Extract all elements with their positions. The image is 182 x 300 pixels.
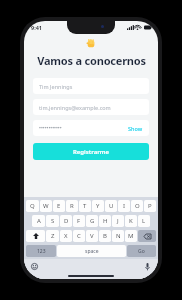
- button[interactable]: Dictate: [143, 262, 152, 271]
- button[interactable]: Backspace: [138, 230, 156, 242]
- button[interactable]: tim.jennings@example.com: [33, 99, 149, 115]
- button[interactable]: space: [57, 245, 126, 257]
- button[interactable]: Go: [127, 245, 156, 257]
- staticText: Q: [30, 202, 35, 210]
- button[interactable]: Shift: [26, 230, 45, 242]
- staticText: D: [64, 217, 69, 225]
- staticText: P: [148, 202, 152, 210]
- staticText: 9:41: [31, 24, 42, 31]
- button[interactable]: T: [79, 200, 91, 212]
- staticText: Z: [51, 232, 55, 240]
- button[interactable]: J: [112, 215, 124, 227]
- button[interactable]: 123: [26, 245, 56, 257]
- staticText: tim.jennings@example.com: [39, 104, 111, 111]
- staticText: V: [90, 232, 94, 240]
- staticText: L: [142, 217, 146, 225]
- button[interactable]: Registrarme: [33, 143, 149, 160]
- staticText: Y: [96, 202, 100, 210]
- staticText: O: [135, 202, 140, 210]
- staticText: A: [37, 217, 41, 225]
- button[interactable]: M: [125, 230, 137, 242]
- staticText: F: [77, 217, 81, 225]
- staticText: S: [51, 217, 55, 225]
- staticText: ••••••••••••: [39, 125, 62, 132]
- staticText: Show: [128, 125, 143, 132]
- staticText: W: [43, 202, 49, 210]
- button[interactable]: F: [73, 215, 85, 227]
- button[interactable]: N: [112, 230, 124, 242]
- button[interactable]: E: [53, 200, 65, 212]
- staticText: C: [77, 232, 81, 240]
- button[interactable]: R: [66, 200, 78, 212]
- button[interactable]: Show: [128, 125, 143, 132]
- button[interactable]: C: [73, 230, 85, 242]
- button[interactable]: X: [60, 230, 72, 242]
- button[interactable]: U: [105, 200, 117, 212]
- staticText: X: [64, 232, 68, 240]
- button[interactable]: O: [131, 200, 143, 212]
- staticText: Registrarme: [73, 148, 110, 156]
- staticText: R: [70, 202, 74, 210]
- button[interactable]: ••••••••••••: [33, 120, 149, 136]
- button[interactable]: P: [144, 200, 156, 212]
- staticText: E: [57, 202, 61, 210]
- staticText: Vamos a conocernos: [37, 53, 146, 68]
- staticText: Tim Jennings: [39, 83, 73, 90]
- staticText: T: [83, 202, 87, 210]
- button[interactable]: Tim Jennings: [33, 78, 149, 94]
- button[interactable]: Y: [92, 200, 104, 212]
- staticText: K: [129, 217, 133, 225]
- button[interactable]: D: [60, 215, 72, 227]
- staticText: I: [123, 202, 126, 210]
- staticText: 123: [37, 248, 46, 255]
- staticText: space: [85, 248, 99, 255]
- button[interactable]: Z: [46, 230, 59, 242]
- staticText: U: [109, 202, 114, 210]
- staticText: J: [117, 217, 119, 225]
- button[interactable]: W: [40, 200, 52, 212]
- staticText: N: [116, 232, 121, 240]
- button[interactable]: H: [99, 215, 111, 227]
- button[interactable]: L: [138, 215, 150, 227]
- button[interactable]: G: [86, 215, 98, 227]
- button[interactable]: K: [125, 215, 137, 227]
- staticText: H: [103, 217, 108, 225]
- button[interactable]: I: [118, 200, 130, 212]
- button[interactable]: S: [46, 215, 59, 227]
- staticText: Go: [138, 248, 145, 255]
- staticText: M: [128, 232, 134, 240]
- button[interactable]: V: [86, 230, 98, 242]
- button[interactable]: Q: [26, 200, 39, 212]
- button[interactable]: B: [99, 230, 111, 242]
- button[interactable]: Emoji: [30, 262, 39, 271]
- button[interactable]: A: [32, 215, 45, 227]
- staticText: G: [90, 217, 95, 225]
- staticText: B: [103, 232, 107, 240]
